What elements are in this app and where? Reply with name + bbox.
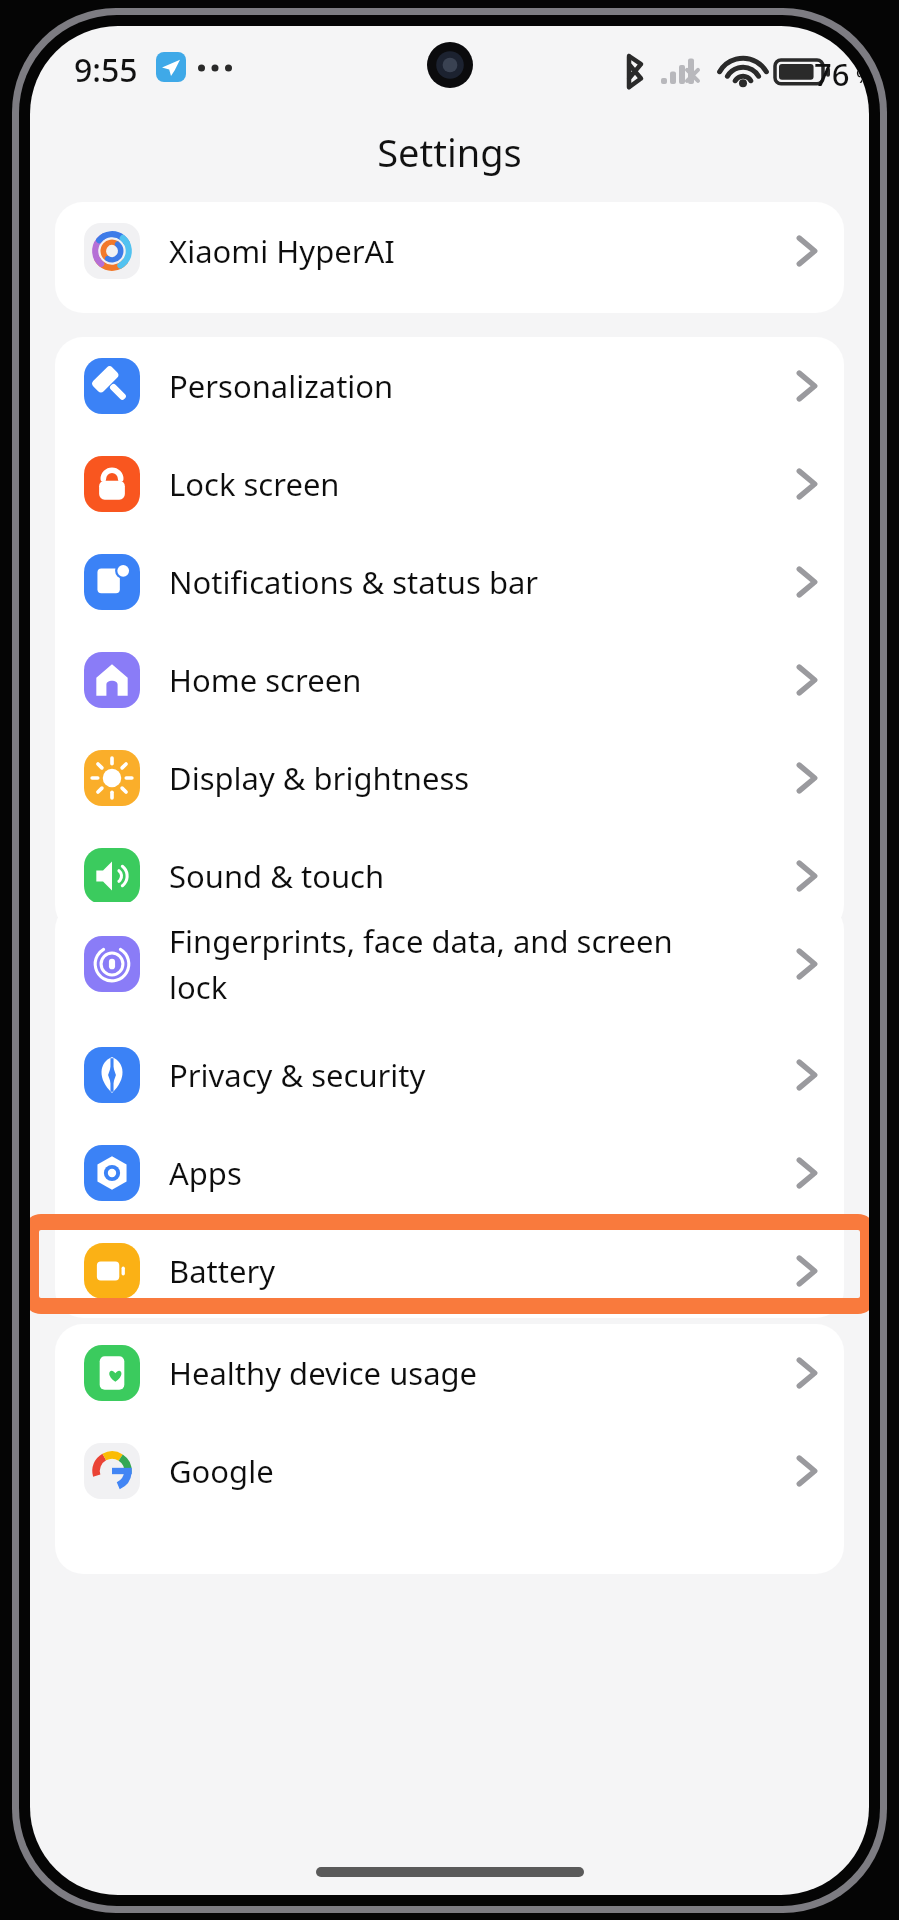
staticText: Google bbox=[169, 1450, 796, 1492]
button[interactable]: Privacy & security bbox=[55, 1026, 844, 1124]
staticText: Personalization bbox=[169, 365, 796, 407]
staticText: Apps bbox=[169, 1152, 796, 1194]
button[interactable]: Apps bbox=[55, 1124, 844, 1222]
staticText: % bbox=[856, 62, 869, 89]
staticText: Lock screen bbox=[169, 463, 796, 505]
staticText: 76 bbox=[814, 53, 850, 95]
staticText: Home screen bbox=[169, 659, 796, 701]
button[interactable]: Notifications & status bar bbox=[55, 533, 844, 631]
staticText: Privacy & security bbox=[169, 1054, 796, 1096]
button[interactable]: Personalization bbox=[55, 337, 844, 435]
staticText: 9:55 bbox=[74, 48, 138, 92]
button[interactable]: Sound & touch bbox=[55, 827, 844, 925]
staticText: Healthy device usage bbox=[169, 1352, 796, 1394]
button[interactable]: Fingerprints, face data, and screen bbox=[55, 902, 844, 1026]
button[interactable]: Xiaomi HyperAI bbox=[55, 202, 844, 300]
button[interactable]: Display & brightness bbox=[55, 729, 844, 827]
staticText: Fingerprints, face data, and screen bbox=[169, 920, 673, 962]
staticText: Xiaomi HyperAI bbox=[169, 230, 796, 272]
staticText: Sound & touch bbox=[169, 855, 796, 897]
button[interactable]: Healthy device usage bbox=[55, 1324, 844, 1422]
staticText: lock bbox=[169, 966, 228, 1008]
staticText: Battery bbox=[169, 1250, 796, 1292]
staticText: Notifications & status bar bbox=[169, 561, 796, 603]
staticText: Settings bbox=[30, 126, 869, 178]
button[interactable]: Home screen bbox=[55, 631, 844, 729]
button[interactable]: Lock screen bbox=[55, 435, 844, 533]
button[interactable]: Battery bbox=[55, 1222, 844, 1318]
staticText: Display & brightness bbox=[169, 757, 796, 799]
button[interactable]: Google bbox=[55, 1422, 844, 1520]
